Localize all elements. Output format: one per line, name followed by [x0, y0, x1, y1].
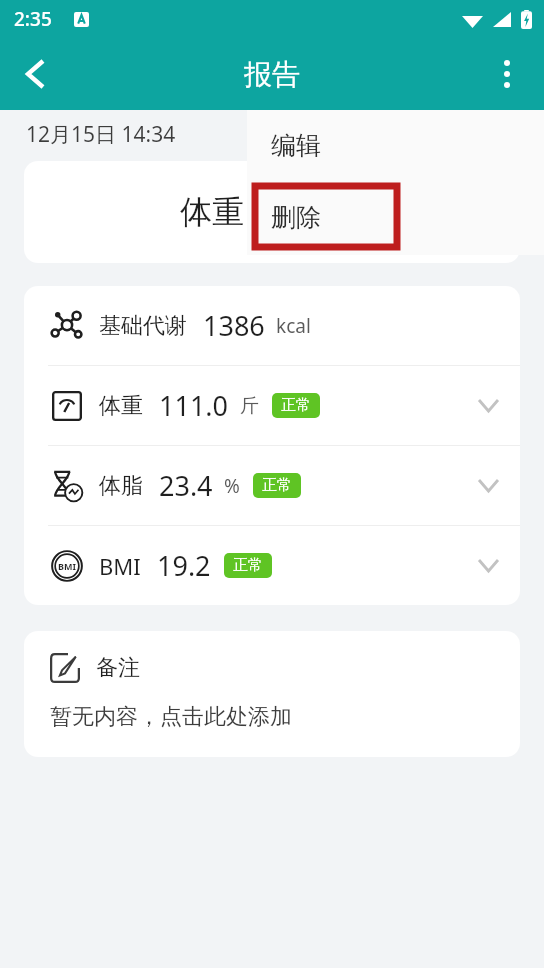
- staticText: 正常: [233, 556, 263, 575]
- button[interactable]: More options: [478, 45, 536, 103]
- staticText: 删除: [271, 202, 321, 233]
- staticText: 体重：: [180, 192, 276, 232]
- button[interactable]: 备注: [24, 631, 520, 757]
- button[interactable]: 体重：: [24, 161, 520, 263]
- staticText: 暂无内容，点击此处添加: [50, 703, 292, 731]
- staticText: 19.2: [157, 547, 211, 584]
- staticText: 基础代谢: [99, 312, 187, 340]
- staticText: BMI: [58, 560, 76, 572]
- staticText: 编辑: [271, 130, 321, 161]
- staticText: 体脂: [99, 472, 143, 500]
- button[interactable]: 删除: [247, 180, 544, 255]
- staticText: 111.0: [159, 387, 229, 424]
- staticText: 23.4: [159, 467, 213, 504]
- button[interactable]: 基础代谢: [24, 286, 520, 365]
- button[interactable]: 体重: [24, 366, 520, 445]
- staticText: 正常: [262, 476, 292, 495]
- staticText: BMI: [99, 551, 141, 581]
- button[interactable]: BMI: [24, 526, 520, 605]
- staticText: 备注: [96, 654, 140, 682]
- staticText: 2:35: [14, 6, 52, 32]
- staticText: 正常: [281, 396, 311, 415]
- staticText: 12月15日 14:34: [26, 120, 176, 149]
- button[interactable]: 编辑: [247, 110, 544, 180]
- staticText: %: [224, 473, 240, 499]
- staticText: kcal: [276, 313, 311, 339]
- staticText: 体重: [99, 392, 143, 420]
- staticText: 斤: [240, 394, 259, 418]
- button[interactable]: 体脂: [24, 446, 520, 525]
- button[interactable]: Back: [6, 45, 64, 103]
- staticText: 报告: [244, 57, 300, 92]
- staticText: 1386: [203, 307, 265, 344]
- staticText: 111.0: [276, 189, 364, 235]
